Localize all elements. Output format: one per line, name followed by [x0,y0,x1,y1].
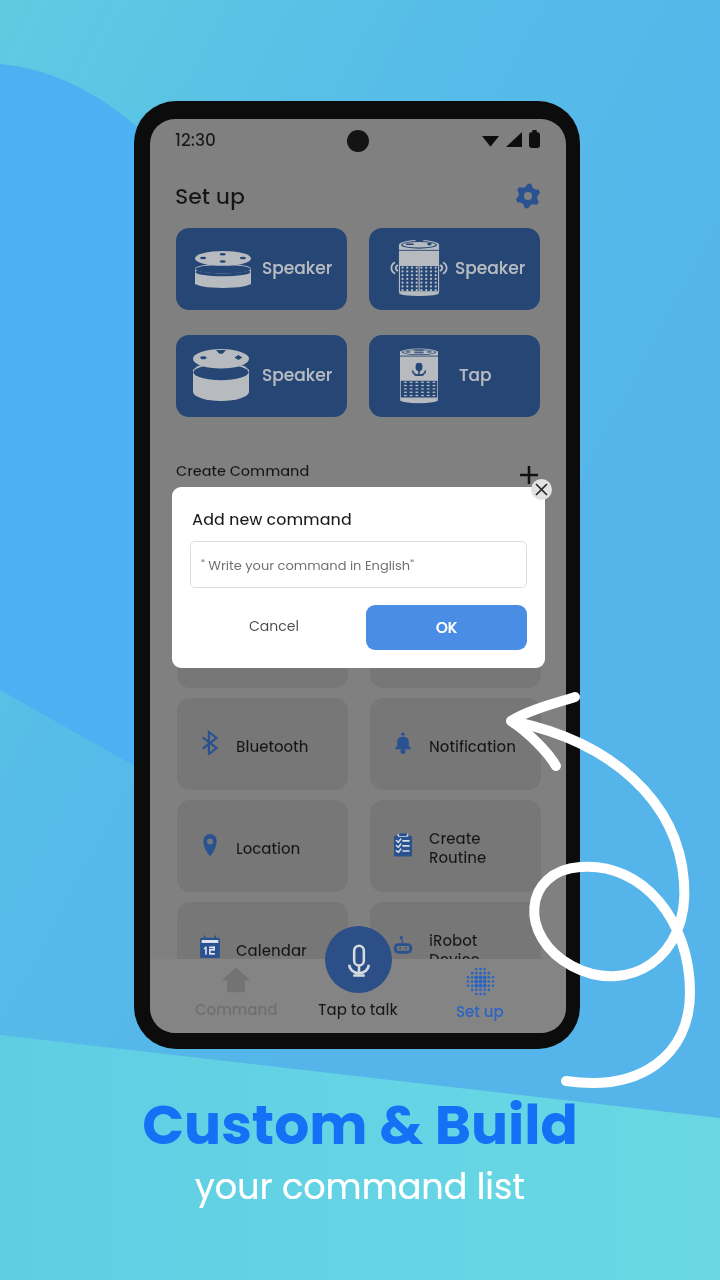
button[interactable]: Tap [369,335,540,417]
staticText: iRobot Device [429,930,480,970]
staticText: Cancel [249,616,299,636]
staticText: Location [236,838,301,859]
staticText: Add new command [192,508,352,530]
button[interactable]: Location [177,800,348,892]
button[interactable]: Calendar [177,902,348,994]
button[interactable]: Close [531,479,552,500]
button[interactable]: Bluetooth [177,698,348,790]
button[interactable]: Tap to talk [298,996,418,1022]
staticText: Create Command [176,461,310,481]
button[interactable]: Speaker [176,228,347,310]
staticText: Alarm [429,532,475,553]
button[interactable]: Volume [177,596,348,688]
staticText: Notification [429,736,516,757]
button[interactable]: Notification [370,698,541,790]
staticText: Set up [456,1001,504,1022]
staticText: Bluetooth [236,736,309,757]
staticText: " Write your command in English" [201,556,414,574]
button[interactable]: Set up [430,966,530,1032]
button[interactable]: Tap to talk [325,926,392,993]
staticText: OK [436,617,458,638]
staticText: Create Routine [429,828,487,868]
staticText: Speaker [262,363,333,387]
staticText: Set up [175,181,245,212]
button[interactable]: Speaker [369,228,540,310]
button[interactable]: Command [186,964,286,1030]
staticText: your command list [0,1162,720,1211]
button[interactable]: Create Routine [370,800,541,892]
staticText: Command [195,999,278,1020]
button[interactable]: OK [366,605,527,650]
staticText: Calendar [236,940,307,961]
button[interactable]: Cancel [224,606,324,646]
button[interactable]: Music [370,596,541,688]
staticText: Custom & Build [0,1086,720,1163]
button[interactable]: " Write your command in English" [190,541,527,588]
staticText: Tap to talk [318,999,398,1020]
button[interactable]: Alarm [370,494,541,586]
button[interactable]: Speaker [176,335,347,417]
staticText: Speaker [455,256,526,280]
button[interactable]: iRobot Device [370,902,541,994]
staticText: 12:30 [175,128,216,152]
button[interactable]: Add command [518,464,540,486]
staticText: Speaker [262,256,333,280]
staticText: Wi-Fi [236,532,276,553]
button[interactable]: Settings [513,181,542,210]
staticText: Music [429,634,473,655]
staticText: Tap [459,363,492,387]
button[interactable]: Wi-Fi [177,494,348,586]
